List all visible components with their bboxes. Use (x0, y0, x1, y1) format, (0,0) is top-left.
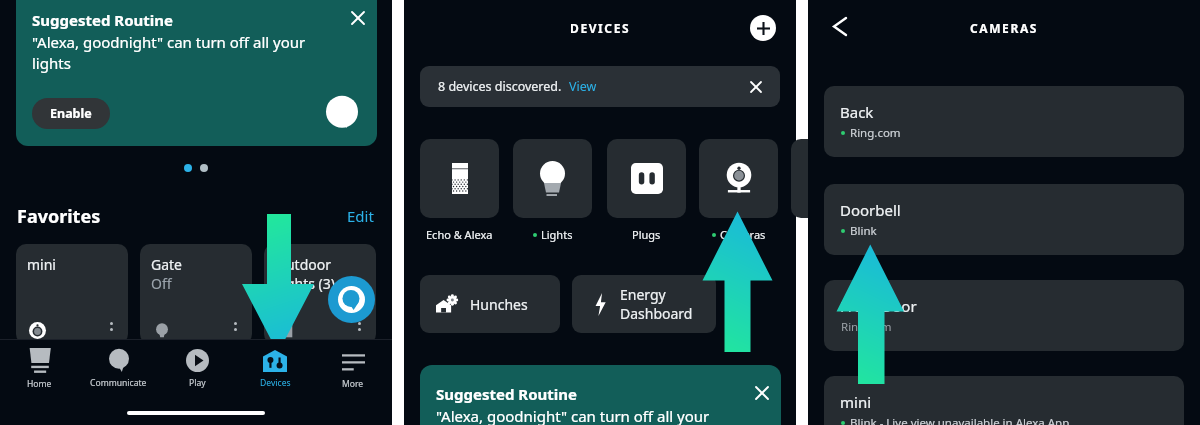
staticText: Plugs (632, 227, 661, 242)
staticText: Favorites (17, 204, 101, 229)
staticText: CAMERAS (970, 20, 1039, 36)
button[interactable]: Add device (750, 15, 776, 41)
button[interactable]: Dismiss (743, 74, 769, 100)
button[interactable] (513, 139, 592, 218)
staticText: "Alexa, goodnight" can turn off all your (436, 406, 710, 425)
button[interactable]: Devices (236, 345, 314, 393)
staticText: Cameras (720, 227, 766, 242)
staticText: Home (27, 378, 52, 390)
staticText: Suggested Routine (436, 384, 577, 404)
staticText: Off (151, 274, 172, 293)
staticText: mini (840, 392, 872, 412)
staticText: Energy Dashboard (620, 285, 693, 323)
staticText: Blink (850, 223, 877, 239)
button[interactable]: Enable (32, 98, 110, 129)
button[interactable]: Communicate (79, 345, 158, 393)
staticText: Back (840, 102, 874, 122)
button[interactable]: Home (0, 345, 79, 393)
staticText: Ring.com (841, 319, 892, 335)
button[interactable]: Edit (347, 206, 374, 226)
staticText: DEVICES (570, 20, 631, 36)
staticText: Blink - Live view unavailable in Alexa A… (850, 415, 1070, 425)
button[interactable]: mini (824, 376, 1184, 425)
button[interactable]: Front Door (824, 280, 1184, 351)
button[interactable]: Back (824, 86, 1184, 157)
button[interactable] (699, 139, 778, 218)
button[interactable]: Hunches (420, 275, 560, 333)
staticText: Ring.com (850, 125, 901, 141)
button[interactable]: mini (16, 244, 128, 344)
staticText: Doorbell (840, 200, 901, 220)
staticText: Hunches (470, 295, 528, 314)
button[interactable]: Close (344, 4, 372, 32)
staticText: Echo & Alexa (426, 227, 493, 242)
staticText: Play (189, 377, 206, 389)
button[interactable]: Energy Dashboard (572, 275, 716, 333)
button[interactable]: Play (158, 345, 236, 393)
staticText: Communicate (90, 377, 147, 389)
staticText: Suggested Routine (32, 10, 173, 30)
button[interactable]: Doorbell (824, 184, 1184, 255)
button[interactable] (607, 139, 686, 218)
button[interactable] (420, 139, 499, 218)
button[interactable]: Suggested Routine (420, 365, 781, 425)
button[interactable]: Outdoor Lights (3) (264, 244, 376, 344)
staticText: Outdoor Lights (3) (275, 255, 369, 293)
button[interactable]: 8 devices discovered. (420, 66, 780, 107)
button[interactable]: Gate (140, 244, 252, 344)
staticText: View (569, 78, 597, 95)
staticText: mini (27, 255, 121, 274)
staticText: Devices (260, 377, 291, 389)
staticText: Gate (151, 255, 245, 274)
staticText: Front Door (840, 296, 917, 316)
button[interactable]: More (314, 345, 392, 393)
button[interactable]: Alexa (328, 276, 375, 323)
button[interactable]: Back (826, 12, 854, 40)
button[interactable]: Close (748, 379, 776, 407)
staticText: "Alexa, goodnight" can turn off all your… (32, 32, 306, 74)
staticText: 8 devices discovered. (438, 78, 562, 95)
staticText: More (342, 378, 364, 390)
staticText: Lights (541, 227, 573, 242)
staticText: Edit (347, 206, 374, 226)
staticText: Enable (50, 105, 92, 122)
button[interactable]: Suggested Routine (16, 0, 377, 146)
